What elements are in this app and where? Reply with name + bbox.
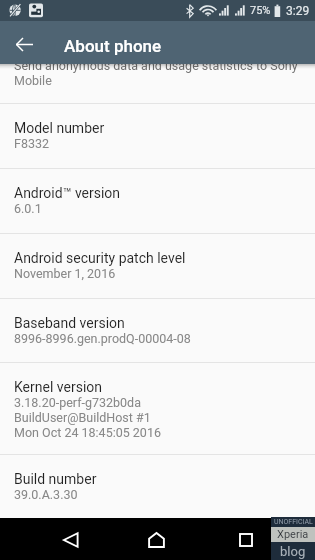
staticText: Kernel version: [14, 379, 103, 395]
staticText: Android security patch level: [14, 250, 186, 266]
staticText: Baseband version: [14, 315, 125, 331]
staticText: 8996-8996.gen.prodQ-00004-08: [14, 331, 191, 346]
staticText: November 1, 2016: [14, 266, 116, 281]
button[interactable]: Kernel version: [0, 363, 315, 454]
button[interactable]: Home: [135, 519, 178, 560]
button[interactable]: Back: [49, 519, 92, 560]
staticText: Mobile: [14, 73, 52, 88]
staticText: BuildUser@BuildHost #1: [14, 410, 151, 425]
staticText: 6.0.1: [14, 201, 42, 216]
button[interactable]: Build number: [0, 455, 315, 518]
button[interactable]: Android security patch level: [0, 234, 315, 298]
staticText: 3.18.20-perf-g732b0da: [14, 395, 141, 410]
staticText: F8332: [14, 136, 50, 151]
button[interactable]: Recent apps: [224, 519, 267, 560]
button[interactable]: Android™ version: [0, 169, 315, 233]
staticText: 75%: [250, 4, 271, 17]
staticText: About phone: [64, 36, 162, 56]
staticText: Send anonymous data and usage statistics…: [14, 64, 298, 73]
staticText: blog: [280, 544, 306, 559]
button[interactable]: Baseband version: [0, 299, 315, 362]
button[interactable]: Model number: [0, 104, 315, 168]
staticText: 39.0.A.3.30: [14, 487, 78, 502]
staticText: Model number: [14, 120, 105, 136]
staticText: 3:29: [286, 4, 310, 18]
staticText: UNOFFICIAL: [274, 518, 313, 526]
staticText: Android™ version: [14, 185, 121, 201]
staticText: Build number: [14, 471, 97, 487]
button[interactable]: Navigate up: [10, 30, 38, 58]
staticText: Xperia: [277, 528, 309, 541]
staticText: Mon Oct 24 18:45:05 2016: [14, 425, 161, 440]
